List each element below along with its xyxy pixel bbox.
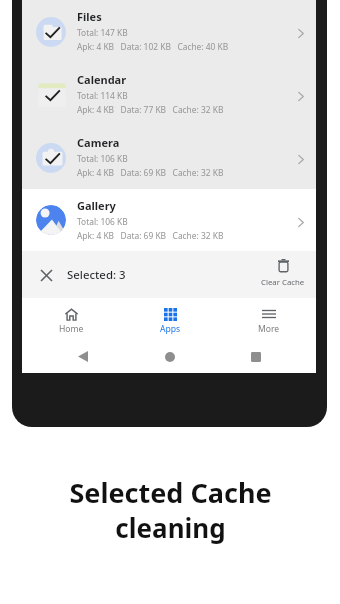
- staticText: Apps: [160, 323, 181, 335]
- button[interactable]: Selected: 3: [67, 251, 126, 298]
- staticText: Apk: 4 KB Data: 77 KB Cache: 32 KB: [77, 104, 224, 115]
- staticText: Camera: [77, 135, 120, 150]
- button[interactable]: Camera: [22, 126, 316, 189]
- staticText: Calendar: [77, 72, 127, 87]
- button[interactable]: Back: [68, 340, 98, 373]
- staticText: cleaning: [115, 510, 226, 545]
- button[interactable]: Clear Cache: [255, 251, 311, 298]
- staticText: Apk: 4 KB Data: 69 KB Cache: 32 KB: [77, 230, 224, 241]
- button[interactable]: Apps: [139, 298, 201, 340]
- staticText: More: [258, 323, 280, 335]
- button[interactable]: Gallery: [22, 189, 316, 251]
- staticText: Selected Cache: [69, 474, 272, 511]
- staticText: Total: 106 KB: [77, 153, 128, 164]
- staticText: Clear Cache: [261, 277, 305, 288]
- button[interactable]: More: [238, 298, 300, 340]
- staticText: Gallery: [77, 198, 116, 213]
- button[interactable]: Recents: [241, 340, 271, 373]
- button[interactable]: Close selection: [33, 262, 59, 288]
- staticText: Apk: 4 KB Data: 102 KB Cache: 40 KB: [77, 41, 229, 52]
- staticText: Files: [77, 9, 102, 24]
- staticText: Total: 114 KB: [77, 90, 128, 101]
- button[interactable]: Calendar: [22, 63, 316, 126]
- staticText: Apk: 4 KB Data: 69 KB Cache: 32 KB: [77, 167, 224, 178]
- staticText: Home: [59, 323, 84, 335]
- staticText: Total: 106 KB: [77, 216, 128, 227]
- button[interactable]: Home: [40, 298, 102, 340]
- staticText: Selected: 3: [67, 267, 126, 283]
- staticText: Total: 147 KB: [77, 27, 128, 38]
- button[interactable]: Files: [22, 0, 316, 63]
- button[interactable]: Home: [155, 340, 185, 373]
